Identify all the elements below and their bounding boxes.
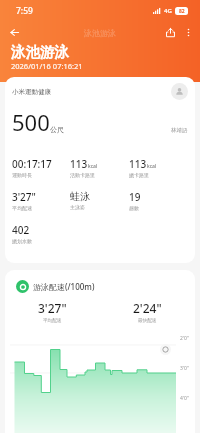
staticText: 7:59 <box>16 5 33 17</box>
staticText: 小米運動健康 <box>12 88 51 96</box>
staticText: 4G <box>164 7 172 15</box>
staticText: 活動卡路里 <box>70 172 95 178</box>
staticText: 公尺 <box>50 125 64 134</box>
staticText: 113 <box>129 157 147 171</box>
staticText: 游泳配速(/100m) <box>33 281 95 292</box>
button[interactable]: Expand chart <box>160 344 171 355</box>
staticText: 總划水數 <box>12 238 32 244</box>
staticText: 運動時長 <box>12 172 32 178</box>
staticText: 82 <box>179 8 185 15</box>
staticText: kcal <box>88 163 98 170</box>
staticText: 蛙泳 <box>70 190 90 203</box>
staticText: 19 <box>129 190 141 204</box>
staticText: 平均配速 <box>12 205 32 211</box>
staticText: 3'27" <box>38 300 67 316</box>
staticText: 3'0" <box>180 365 189 372</box>
staticText: 500 <box>12 107 50 137</box>
staticText: 00:17:17 <box>12 157 52 171</box>
staticText: 平均配速 <box>43 318 62 324</box>
staticText: 113 <box>70 157 88 171</box>
staticText: 2'0" <box>180 335 189 342</box>
staticText: 總卡路里 <box>129 172 149 178</box>
staticText: kcal <box>147 163 157 170</box>
staticText: 林靖語 <box>171 127 188 134</box>
staticText: 402 <box>12 223 30 237</box>
button[interactable]: Share <box>161 23 180 42</box>
staticText: 泳池游泳 <box>11 43 69 61</box>
staticText: 泳池游泳 <box>84 28 116 38</box>
staticText: 主泳姿 <box>70 204 85 210</box>
staticText: 4'0" <box>180 395 189 402</box>
staticText: 最快配速 <box>138 318 157 324</box>
staticText: 3'27" <box>12 190 36 204</box>
staticText: 2026/01/16 07:16:21 <box>11 61 83 71</box>
button[interactable]: Back <box>5 23 24 42</box>
staticText: 趟數 <box>129 205 139 211</box>
button[interactable]: More options <box>180 24 197 41</box>
staticText: 2'24" <box>133 300 162 316</box>
